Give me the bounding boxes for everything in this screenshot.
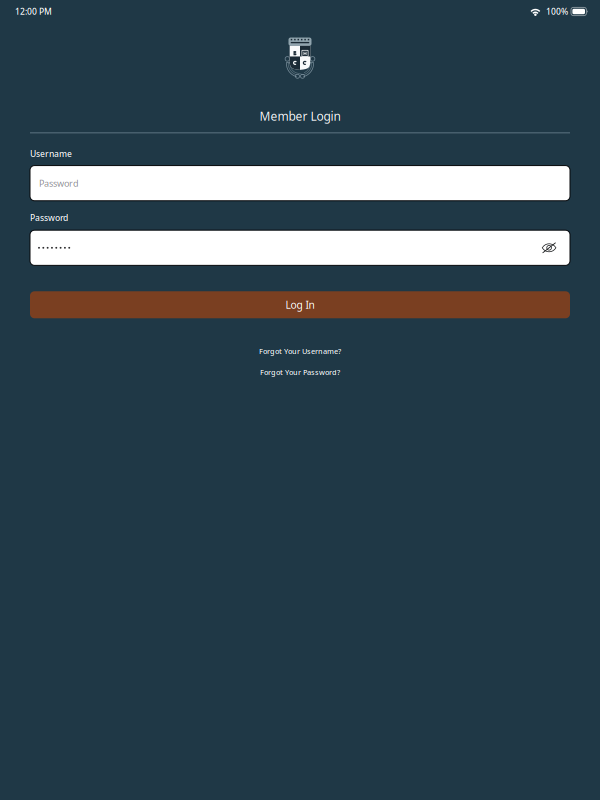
button[interactable]: Show password [533,233,556,263]
staticText: Forgot Your Password? [260,367,340,377]
staticText: Password [39,177,79,189]
staticText: Log In [285,298,314,312]
staticText: 100% [546,6,568,17]
button[interactable]: Log In [30,291,570,318]
staticText: Member Login [259,108,340,124]
button[interactable]: Forgot Your Password? [248,364,352,380]
button[interactable]: Forgot Your Username? [247,343,353,359]
staticText: Username [30,148,72,159]
staticText: Password [30,212,68,223]
staticText: 12:00 PM [15,6,52,17]
staticText: Forgot Your Username? [259,346,341,356]
